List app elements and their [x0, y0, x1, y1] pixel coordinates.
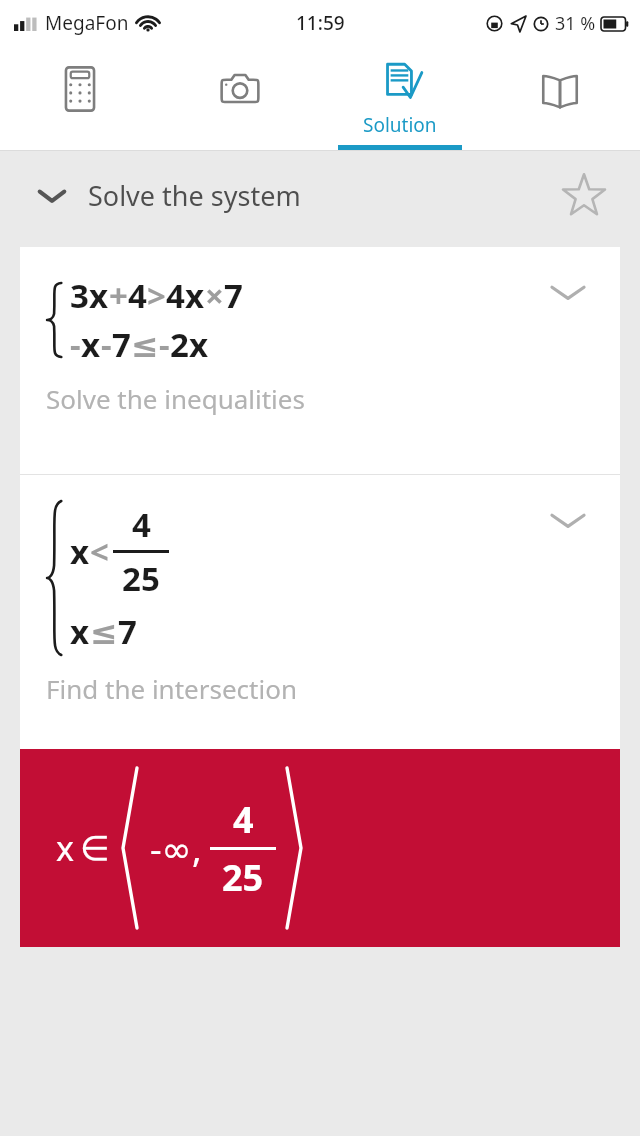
button[interactable]: Expand step	[544, 497, 592, 545]
staticText: ∈	[80, 828, 110, 868]
staticText: ≤	[90, 613, 118, 651]
staticText: -∞	[150, 824, 192, 873]
staticText: 7	[224, 273, 243, 318]
button[interactable]: Collapse	[34, 177, 301, 214]
staticText: ≤	[131, 326, 159, 364]
staticText: x	[89, 273, 109, 318]
staticText: x	[81, 322, 101, 367]
staticText: 7	[112, 322, 131, 367]
button[interactable]: Favorite	[556, 167, 612, 223]
staticText: 4	[132, 502, 151, 547]
button[interactable]: Expand step	[544, 269, 592, 317]
staticText: 4	[166, 273, 185, 318]
staticText: 3	[70, 273, 89, 318]
button[interactable]: Textbook	[480, 46, 640, 151]
staticText: -	[101, 322, 112, 367]
button[interactable]: Camera	[160, 46, 320, 151]
button[interactable]: x	[20, 749, 620, 947]
staticText: Solve the system	[88, 177, 301, 214]
staticText: 25	[222, 853, 264, 902]
staticText: x	[70, 609, 90, 654]
other: Collapse	[34, 185, 70, 207]
staticText: 2	[170, 322, 189, 367]
staticText: 11:59	[296, 10, 345, 36]
staticText: x	[70, 529, 90, 574]
staticText: -	[159, 322, 170, 367]
staticText: MegaFon	[45, 10, 129, 36]
button[interactable]: Solution	[320, 46, 480, 151]
staticText: x	[189, 322, 209, 367]
staticText: +	[109, 273, 128, 318]
staticText: Solution	[363, 112, 437, 138]
staticText: >	[147, 273, 166, 318]
staticText: ×	[205, 273, 224, 318]
staticText: 31 %	[555, 11, 596, 36]
staticText: 4	[128, 273, 147, 318]
staticText: Find the intersection	[46, 671, 297, 706]
staticText: x	[185, 273, 205, 318]
staticText: 25	[122, 556, 160, 601]
staticText: <	[90, 529, 109, 574]
staticText: x	[56, 825, 74, 871]
staticText: 4	[233, 795, 254, 844]
staticText: -	[70, 322, 81, 367]
button[interactable]: x	[20, 475, 620, 749]
staticText: 7	[118, 609, 137, 654]
staticText: Solve the inequalities	[46, 381, 305, 416]
button[interactable]: Calculator	[0, 46, 160, 151]
staticText: ,	[192, 824, 202, 873]
button[interactable]: 3	[20, 247, 620, 474]
